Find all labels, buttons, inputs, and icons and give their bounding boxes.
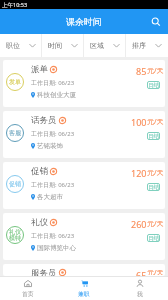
staticText: 120 <box>131 167 147 179</box>
button[interactable]: Search <box>143 9 168 34</box>
button[interactable]: 我 <box>112 277 168 300</box>
staticText: 工作日期: 06/23 <box>31 181 75 189</box>
staticText: 上午10:53 <box>2 1 28 9</box>
button[interactable]: 礼仪 模特 <box>3 213 165 260</box>
staticText: 元/天 <box>147 268 164 275</box>
staticText: 话务员 <box>31 115 57 126</box>
staticText: 派单 <box>31 64 48 75</box>
staticText: 发单 <box>9 78 21 86</box>
staticText: 工作日期: 06/23 <box>31 130 75 138</box>
button[interactable]: 客服 <box>3 111 165 158</box>
staticText: 元/天 <box>147 219 164 229</box>
button[interactable]: 排序 <box>126 34 168 57</box>
button[interactable]: 促销 <box>3 162 165 209</box>
staticText: 日结 <box>148 133 159 140</box>
staticText: 服务员 <box>31 268 57 276</box>
staticText: 各大超市 <box>37 193 63 201</box>
staticText: 260 <box>131 218 147 230</box>
button[interactable]: 发单 <box>3 60 165 107</box>
staticText: 促销 <box>31 166 48 177</box>
staticText: 工作日期: 06/23 <box>31 79 75 87</box>
button[interactable]: 兼职 <box>56 277 112 300</box>
staticText: 元/天 <box>147 66 164 76</box>
staticText: 我 <box>137 290 143 297</box>
staticText: 时间 <box>48 41 62 50</box>
staticText: 元/天 <box>147 168 164 178</box>
staticText: 礼仪 模特 <box>9 228 21 242</box>
staticText: 85 <box>136 65 147 77</box>
staticText: 65 <box>136 269 147 276</box>
button[interactable]: 时间 <box>42 34 84 57</box>
staticText: 日结 <box>148 235 159 242</box>
staticText: 兼职 <box>78 290 90 297</box>
staticText: 科技创业大厦 <box>37 91 76 99</box>
staticText: 排序 <box>132 41 146 50</box>
staticText: 日结 <box>148 184 159 191</box>
staticText: 艺铭装饰 <box>37 142 63 150</box>
staticText: 日结 <box>148 82 159 89</box>
button[interactable]: 职位 <box>0 34 42 57</box>
staticText: 礼仪 <box>31 217 48 228</box>
staticText: 促销 <box>9 180 21 188</box>
staticText: 元/天 <box>147 117 164 127</box>
staticText: 工作日期: 06/23 <box>31 232 75 240</box>
staticText: 课余时间 <box>66 16 102 27</box>
staticText: 职位 <box>6 41 20 50</box>
button[interactable]: 区域 <box>84 34 126 57</box>
staticText: 100 <box>131 116 147 128</box>
staticText: 首页 <box>22 290 34 297</box>
staticText: 客服 <box>9 129 21 137</box>
staticText: 区域 <box>90 41 104 50</box>
staticText: 国际博览中心 <box>37 244 76 252</box>
button[interactable]: 服务 <box>3 264 165 276</box>
button[interactable]: 首页 <box>0 277 56 300</box>
